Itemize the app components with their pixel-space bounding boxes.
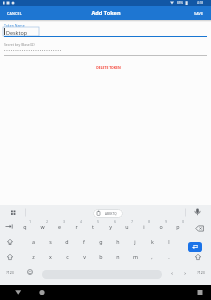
- staticText: b: [99, 253, 103, 260]
- staticText: 7: [131, 220, 133, 224]
- staticText: 85%: [177, 1, 183, 5]
- staticText: 6: [114, 220, 116, 224]
- staticText: g: [99, 238, 103, 245]
- staticText: z: [32, 253, 35, 260]
- staticText: i: [143, 223, 145, 230]
- staticText: c: [66, 253, 69, 260]
- button[interactable]: ‹: [167, 265, 177, 279]
- button[interactable]: f: [77, 234, 91, 248]
- staticText: ••••••••••••••••••••••••••: [4, 48, 62, 53]
- staticText: Desktop: [6, 29, 27, 36]
- button[interactable]: s: [43, 234, 57, 248]
- button[interactable]: SAVE: [188, 7, 209, 19]
- staticText: v: [83, 253, 86, 260]
- button[interactable]: i: [137, 219, 151, 233]
- button[interactable]: [32, 287, 52, 299]
- button[interactable]: ?123: [2, 265, 18, 279]
- staticText: ?123: [6, 270, 14, 275]
- staticText: 4:18: [197, 1, 203, 5]
- button[interactable]: a: [26, 234, 40, 248]
- staticText: .: [168, 253, 170, 260]
- staticText: f: [83, 238, 85, 245]
- staticText: AB3K7Q: [105, 212, 117, 216]
- button[interactable]: AB3K7Q: [93, 209, 123, 218]
- staticText: 1: [29, 220, 31, 224]
- button[interactable]: n: [111, 249, 125, 263]
- staticText: o: [159, 223, 163, 230]
- staticText: e: [58, 223, 61, 230]
- staticText: CANCEL: [7, 11, 22, 16]
- staticText: 3: [63, 220, 65, 224]
- staticText: k: [151, 238, 154, 245]
- button[interactable]: j: [128, 234, 142, 248]
- staticText: 4: [80, 220, 82, 224]
- button[interactable]: ?123: [193, 265, 209, 279]
- staticText: t: [92, 223, 94, 230]
- staticText: 2: [46, 220, 48, 224]
- staticText: ‹: [171, 269, 173, 276]
- button[interactable]: r: [69, 219, 83, 233]
- staticText: DELETE TOKEN: [96, 65, 121, 70]
- button[interactable]: [8, 287, 28, 299]
- staticText: ›: [184, 269, 186, 276]
- button[interactable]: k: [145, 234, 159, 248]
- button[interactable]: q: [18, 219, 32, 233]
- button[interactable]: CANCEL: [2, 7, 26, 19]
- button[interactable]: ›: [180, 265, 190, 279]
- button[interactable]: m: [128, 249, 142, 263]
- button[interactable]: t: [86, 219, 100, 233]
- button[interactable]: ,: [145, 249, 159, 263]
- button[interactable]: l: [162, 234, 176, 248]
- staticText: d: [65, 238, 69, 245]
- staticText: l: [168, 238, 170, 245]
- button[interactable]: v: [77, 249, 91, 263]
- button[interactable]: x: [43, 249, 57, 263]
- staticText: ?123: [197, 270, 205, 275]
- button[interactable]: w: [35, 219, 49, 233]
- staticText: h: [116, 238, 120, 245]
- button[interactable]: DELETE TOKEN: [78, 60, 138, 74]
- staticText: Secret key (Base32): [4, 42, 35, 47]
- staticText: a: [32, 238, 35, 245]
- staticText: Token Name: [4, 23, 25, 28]
- button[interactable]: e: [52, 219, 66, 233]
- staticText: Add Token: [91, 9, 121, 17]
- button[interactable]: p: [171, 219, 185, 233]
- staticText: SAVE: [194, 11, 204, 16]
- staticText: r: [75, 223, 78, 230]
- button[interactable]: h: [111, 234, 125, 248]
- staticText: 9: [165, 220, 167, 224]
- button[interactable]: [190, 287, 210, 299]
- button[interactable]: u: [120, 219, 134, 233]
- staticText: m: [133, 253, 138, 260]
- button[interactable]: d: [60, 234, 74, 248]
- button[interactable]: c: [60, 249, 74, 263]
- staticText: ,: [151, 253, 153, 260]
- staticText: y: [109, 223, 112, 230]
- staticText: q: [23, 223, 27, 230]
- button[interactable]: o: [154, 219, 168, 233]
- staticText: p: [176, 223, 180, 230]
- staticText: 8: [148, 220, 150, 224]
- staticText: s: [49, 238, 52, 245]
- button[interactable]: g: [94, 234, 108, 248]
- staticText: n: [116, 253, 120, 260]
- staticText: u: [125, 223, 129, 230]
- button[interactable]: y: [103, 219, 117, 233]
- button[interactable]: b: [94, 249, 108, 263]
- staticText: x: [49, 253, 52, 260]
- button[interactable]: [188, 242, 202, 252]
- staticText: 0: [182, 220, 184, 224]
- staticText: 5: [97, 220, 99, 224]
- staticText: w: [40, 223, 45, 230]
- staticText: j: [134, 238, 136, 245]
- button[interactable]: z: [26, 249, 40, 263]
